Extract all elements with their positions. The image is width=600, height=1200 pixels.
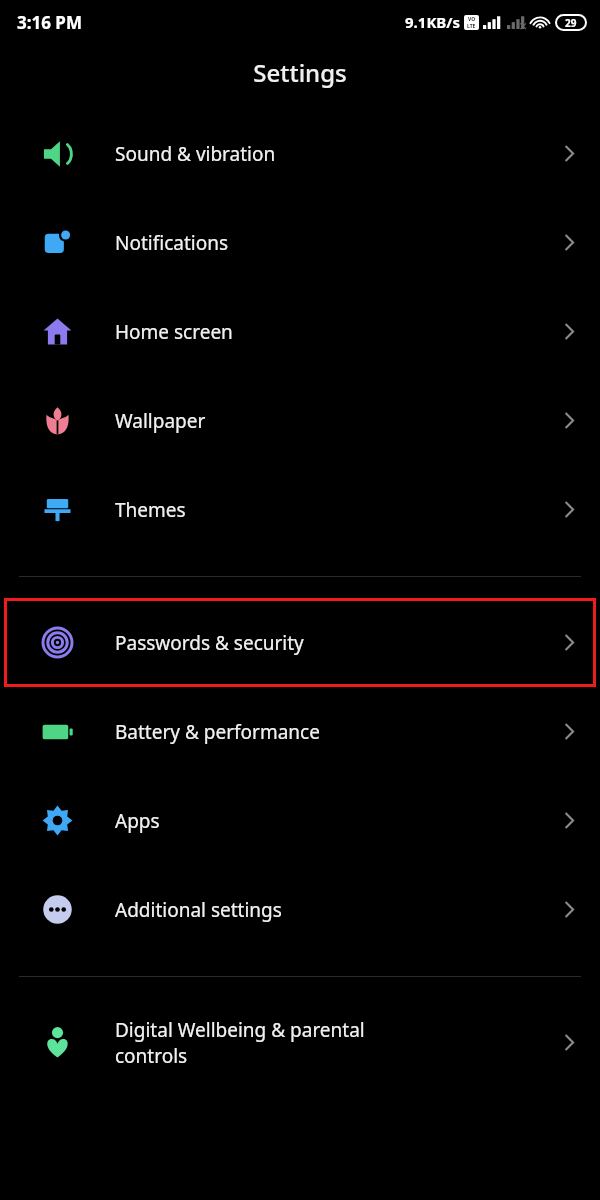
- staticText: Additional settings: [115, 897, 538, 923]
- staticText: Settings: [253, 56, 347, 89]
- button[interactable]: Digital Wellbeing & parental controls: [0, 998, 600, 1087]
- button[interactable]: Battery & performance: [0, 687, 600, 776]
- staticText: Wallpaper: [115, 408, 538, 434]
- button[interactable]: Sound & vibration: [0, 109, 600, 198]
- button[interactable]: Wallpaper: [0, 376, 600, 465]
- staticText: Sound & vibration: [115, 141, 538, 167]
- button[interactable]: Passwords & security: [0, 598, 600, 687]
- other: Highlighted item: [4, 598, 596, 687]
- staticText: 9.1KB/s: [405, 12, 461, 32]
- staticText: LTE: [467, 23, 476, 30]
- button[interactable]: Themes: [0, 465, 600, 554]
- staticText: Themes: [115, 497, 538, 523]
- button[interactable]: Notifications: [0, 198, 600, 287]
- staticText: VO: [468, 16, 476, 23]
- staticText: Notifications: [115, 230, 538, 256]
- staticText: Home screen: [115, 319, 538, 345]
- staticText: 29: [565, 16, 577, 30]
- button[interactable]: Apps: [0, 776, 600, 865]
- staticText: 3:16 PM: [17, 11, 82, 34]
- button[interactable]: Additional settings: [0, 865, 600, 954]
- staticText: Apps: [115, 808, 538, 834]
- button[interactable]: Home screen: [0, 287, 600, 376]
- staticText: Digital Wellbeing & parental controls: [115, 1017, 538, 1068]
- staticText: Battery & performance: [115, 719, 538, 745]
- staticText: Passwords & security: [115, 630, 538, 656]
